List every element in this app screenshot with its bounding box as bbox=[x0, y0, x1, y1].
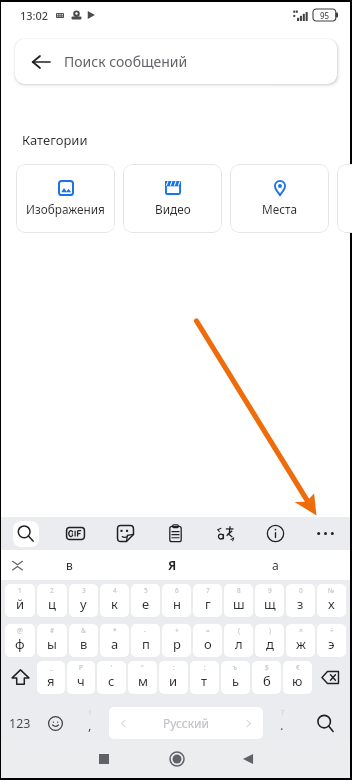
button[interactable]: Stickers bbox=[100, 517, 150, 550]
button[interactable]: ? bbox=[263, 707, 301, 739]
button[interactable]: + bbox=[162, 624, 191, 657]
button[interactable]: _ bbox=[37, 661, 65, 694]
button[interactable]: " bbox=[128, 661, 157, 694]
button[interactable]: Expand suggestions bbox=[1, 550, 33, 580]
button[interactable]: Backspace bbox=[313, 661, 347, 694]
staticText: ъ bbox=[233, 663, 238, 672]
staticText: н bbox=[173, 595, 181, 613]
staticText: Места bbox=[262, 201, 298, 217]
button[interactable]: Emoji bbox=[39, 707, 71, 739]
button[interactable]: a bbox=[224, 550, 327, 580]
button[interactable]: : bbox=[159, 661, 188, 694]
staticText: Русский bbox=[163, 715, 209, 731]
button[interactable]: 4 bbox=[100, 584, 129, 617]
staticText: я bbox=[47, 672, 55, 690]
button[interactable]: Recents bbox=[84, 740, 124, 778]
button[interactable]: 3 bbox=[69, 584, 98, 617]
staticText: Р bbox=[79, 663, 83, 672]
button[interactable]: Видео bbox=[123, 164, 222, 233]
staticText: м bbox=[138, 672, 148, 690]
button[interactable]: Я bbox=[121, 550, 224, 580]
staticText: 5 bbox=[144, 586, 148, 595]
button[interactable]: Back bbox=[15, 39, 337, 84]
button[interactable]: & bbox=[69, 624, 98, 657]
staticText: , bbox=[88, 716, 92, 734]
staticText: 8 bbox=[237, 586, 241, 595]
button[interactable]: Русский bbox=[109, 707, 263, 739]
staticText: € bbox=[296, 663, 300, 672]
button[interactable]: 9 bbox=[255, 584, 284, 617]
staticText: + bbox=[175, 626, 179, 635]
staticText: Я bbox=[168, 557, 177, 573]
staticText: ш bbox=[233, 595, 245, 613]
button[interactable]: ÷ bbox=[317, 624, 346, 657]
staticText: 4 bbox=[113, 586, 117, 595]
staticText: Изображения bbox=[26, 201, 105, 217]
button[interactable]: * bbox=[100, 624, 129, 657]
button[interactable]: Info bbox=[250, 517, 300, 550]
staticText: a bbox=[272, 557, 279, 573]
staticText: - bbox=[144, 626, 147, 635]
staticText: @ bbox=[17, 626, 23, 635]
button[interactable]: # bbox=[37, 624, 67, 657]
staticText: × bbox=[299, 626, 303, 635]
button[interactable]: ) bbox=[255, 624, 284, 657]
button[interactable]: @ bbox=[5, 624, 35, 657]
button[interactable]: ' bbox=[97, 661, 126, 694]
button[interactable]: - bbox=[131, 624, 160, 657]
button[interactable]: Р bbox=[67, 661, 95, 694]
button[interactable]: Search bbox=[301, 707, 350, 739]
staticText: 123 bbox=[9, 715, 31, 732]
button[interactable]: € bbox=[283, 661, 312, 694]
staticText: . bbox=[280, 716, 284, 734]
staticText: р bbox=[173, 635, 181, 653]
button[interactable]: в bbox=[17, 550, 121, 580]
button[interactable]: № bbox=[317, 584, 346, 617]
button[interactable] bbox=[337, 164, 352, 233]
staticText: в bbox=[80, 635, 88, 653]
button[interactable]: = bbox=[193, 624, 222, 657]
staticText: ( bbox=[238, 626, 240, 635]
button[interactable]: Translate bbox=[200, 517, 250, 550]
button[interactable]: 7 bbox=[193, 584, 222, 617]
staticText: ю bbox=[292, 672, 303, 690]
staticText: 7 bbox=[206, 586, 210, 595]
button[interactable]: ; bbox=[190, 661, 219, 694]
button[interactable]: × bbox=[286, 624, 315, 657]
button[interactable]: 5 bbox=[131, 584, 160, 617]
button[interactable]: GIF bbox=[50, 517, 100, 550]
button[interactable]: Home bbox=[157, 740, 197, 778]
button[interactable]: Search bbox=[1, 517, 50, 550]
staticText: г bbox=[205, 595, 211, 613]
button[interactable]: More options bbox=[300, 517, 350, 550]
staticText: о bbox=[204, 635, 212, 653]
staticText: 95 bbox=[320, 10, 330, 21]
staticText: 9 bbox=[268, 586, 272, 595]
button[interactable]: Back bbox=[228, 740, 268, 778]
button[interactable]: ( bbox=[224, 624, 253, 657]
button[interactable]: $ bbox=[252, 661, 281, 694]
staticText: к bbox=[111, 595, 118, 613]
button[interactable]: ! bbox=[71, 707, 109, 739]
staticText: 0 bbox=[299, 586, 303, 595]
button[interactable]: 6 bbox=[162, 584, 191, 617]
staticText: х bbox=[328, 595, 335, 613]
staticText: # bbox=[50, 626, 55, 635]
button[interactable]: 0 bbox=[286, 584, 315, 617]
staticText: л bbox=[235, 635, 243, 653]
staticText: в bbox=[66, 557, 73, 573]
button[interactable]: ъ bbox=[221, 661, 250, 694]
staticText: ) bbox=[269, 626, 271, 635]
staticText: * bbox=[113, 626, 117, 635]
button[interactable]: Clipboard bbox=[150, 517, 200, 550]
staticText: ь bbox=[232, 672, 240, 690]
button[interactable]: 2 bbox=[37, 584, 67, 617]
staticText: т bbox=[201, 672, 208, 690]
staticText: е bbox=[142, 595, 150, 613]
button[interactable]: 123 bbox=[1, 707, 39, 739]
button[interactable]: Места bbox=[230, 164, 329, 233]
button[interactable]: 8 bbox=[224, 584, 253, 617]
button[interactable]: Shift bbox=[4, 661, 36, 694]
button[interactable]: Изображения bbox=[16, 164, 115, 233]
button[interactable]: 1 bbox=[5, 584, 35, 617]
